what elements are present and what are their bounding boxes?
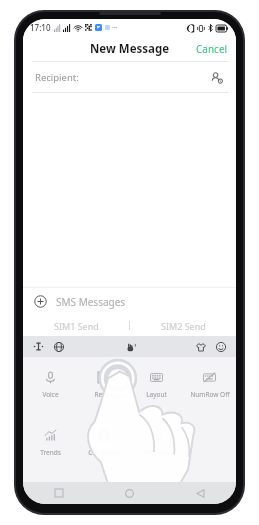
button[interactable]: Resize — [77, 366, 130, 424]
staticText: Resize — [94, 390, 114, 399]
button[interactable]: Theme — [193, 339, 208, 354]
button[interactable]: Trends — [23, 424, 77, 482]
button[interactable]: Emoji — [213, 339, 228, 354]
button[interactable]: SMS Messages — [23, 288, 236, 315]
staticText: Voice — [42, 390, 59, 399]
button[interactable]: Settings — [130, 424, 183, 482]
button[interactable]: Cancel — [188, 38, 236, 60]
staticText: NumRow Off — [190, 390, 230, 399]
staticText: Trends — [40, 448, 61, 457]
button[interactable]: SIM1 Send — [23, 315, 129, 336]
staticText: Clip Board — [88, 448, 120, 457]
staticText: SIM1 Send — [54, 320, 99, 332]
button[interactable]: Home — [94, 482, 165, 504]
staticText: Recipient: — [35, 71, 79, 84]
button[interactable]: Text cursor — [31, 339, 46, 354]
staticText: SIM2 Send — [161, 320, 206, 332]
button[interactable]: SIM2 Send — [130, 315, 236, 336]
button[interactable]: Layout — [130, 366, 183, 424]
button[interactable]: Handwriting — [122, 339, 138, 355]
button[interactable]: Voice — [23, 366, 77, 424]
staticText: 17:10 — [30, 22, 51, 33]
staticText: Cancel — [196, 42, 228, 56]
button[interactable]: Clip Board — [77, 424, 130, 482]
button[interactable]: Recents — [23, 482, 94, 504]
staticText: Settings — [144, 448, 169, 457]
staticText: New Message — [90, 41, 170, 57]
button[interactable]: Back — [165, 482, 236, 504]
staticText: ··· — [112, 23, 118, 33]
button[interactable]: NumRow Off — [183, 366, 236, 424]
staticText: Layout — [146, 390, 167, 399]
button[interactable]: Language — [51, 339, 66, 354]
button[interactable]: Add contact — [208, 69, 226, 87]
staticText: SMS Messages — [56, 295, 126, 309]
